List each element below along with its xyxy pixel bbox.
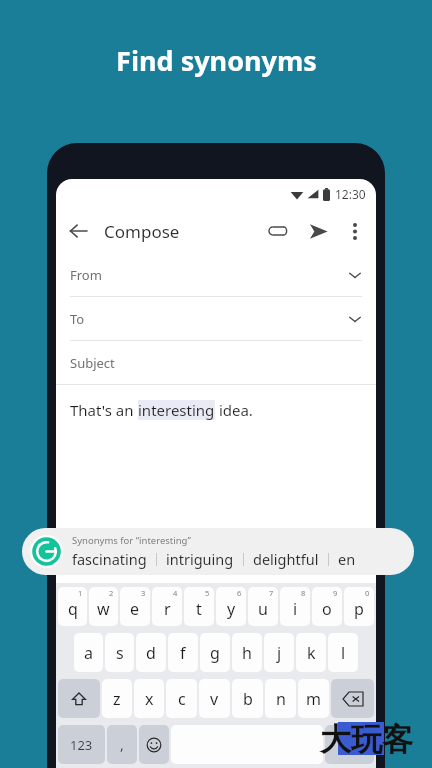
- button[interactable]: h: [232, 633, 262, 672]
- staticText: That's an: [70, 400, 138, 420]
- button[interactable]: v: [199, 679, 230, 718]
- staticText: 3: [141, 588, 146, 598]
- staticText: l: [341, 642, 346, 664]
- button[interactable]: 8: [280, 587, 310, 626]
- staticText: Synonyms for “interesting”: [72, 534, 191, 547]
- staticText: e: [130, 598, 140, 620]
- staticText: 12:30: [335, 186, 366, 202]
- button[interactable]: Attach: [258, 211, 298, 251]
- staticText: x: [145, 688, 154, 710]
- staticText: 1: [78, 588, 83, 598]
- staticText: 大: [320, 720, 351, 759]
- button[interactable]: 3: [120, 587, 150, 626]
- staticText: 9: [333, 588, 338, 598]
- staticText: j: [277, 642, 282, 664]
- staticText: delightful: [253, 549, 319, 569]
- button[interactable]: l: [328, 633, 358, 672]
- button[interactable]: 4: [152, 587, 182, 626]
- button[interactable]: Subject: [56, 341, 376, 384]
- button[interactable]: intriguing: [166, 549, 234, 569]
- button[interactable]: 2: [89, 587, 118, 626]
- staticText: en: [338, 549, 356, 569]
- button[interactable]: s: [105, 633, 134, 672]
- staticText: 4: [173, 588, 178, 598]
- staticText: Compose: [104, 220, 180, 243]
- button[interactable]: Numbers: [58, 725, 105, 764]
- staticText: m: [306, 688, 321, 710]
- staticText: k: [307, 642, 316, 664]
- button[interactable]: From: [56, 253, 376, 297]
- staticText: g: [210, 642, 220, 664]
- button[interactable]: fascinating: [72, 549, 147, 569]
- staticText: w: [97, 598, 110, 620]
- staticText: d: [146, 642, 156, 664]
- staticText: f: [180, 642, 186, 664]
- staticText: 7: [269, 588, 274, 598]
- button[interactable]: Shift: [58, 679, 100, 718]
- staticText: To: [70, 310, 85, 328]
- staticText: 6: [237, 588, 242, 598]
- staticText: c: [178, 688, 186, 710]
- staticText: a: [84, 642, 93, 664]
- staticText: o: [322, 598, 332, 620]
- staticText: 客: [382, 720, 413, 759]
- button[interactable]: m: [298, 679, 329, 718]
- staticText: r: [164, 598, 171, 620]
- staticText: fascinating: [72, 549, 147, 569]
- staticText: y: [227, 598, 236, 620]
- button[interactable]: Back: [56, 209, 100, 253]
- staticText: t: [196, 598, 202, 620]
- staticText: i: [293, 598, 298, 620]
- staticText: interesting: [138, 400, 215, 420]
- staticText: From: [70, 266, 102, 284]
- button[interactable]: 9: [312, 587, 342, 626]
- button[interactable]: Enter: [325, 725, 374, 764]
- staticText: v: [210, 688, 219, 710]
- button[interactable]: d: [136, 633, 166, 672]
- button[interactable]: en: [338, 549, 356, 569]
- staticText: 0: [365, 588, 370, 598]
- staticText: 123: [70, 736, 93, 754]
- button[interactable]: Emoji: [139, 725, 169, 764]
- staticText: ,: [120, 735, 124, 754]
- staticText: b: [243, 688, 253, 710]
- button[interactable]: delightful: [253, 549, 319, 569]
- staticText: s: [116, 642, 124, 664]
- button[interactable]: Backspace: [331, 679, 374, 718]
- staticText: Find synonyms: [116, 42, 317, 79]
- button[interactable]: 7: [248, 587, 278, 626]
- button[interactable]: n: [265, 679, 296, 718]
- staticText: u: [258, 598, 268, 620]
- button[interactable]: More options: [338, 214, 372, 248]
- staticText: 2: [109, 588, 114, 598]
- button[interactable]: 0: [344, 587, 374, 626]
- staticText: Subject: [70, 354, 115, 372]
- staticText: n: [276, 688, 286, 710]
- button[interactable]: Space: [171, 725, 323, 764]
- button[interactable]: 5: [184, 587, 214, 626]
- button[interactable]: 1: [58, 587, 87, 626]
- staticText: intriguing: [166, 549, 234, 569]
- button[interactable]: k: [296, 633, 326, 672]
- button[interactable]: Comma: [107, 725, 137, 764]
- button[interactable]: a: [74, 633, 103, 672]
- button[interactable]: f: [168, 633, 198, 672]
- button[interactable]: c: [166, 679, 197, 718]
- button[interactable]: j: [264, 633, 294, 672]
- button[interactable]: Send: [298, 211, 338, 251]
- button[interactable]: b: [232, 679, 263, 718]
- staticText: z: [113, 688, 121, 710]
- staticText: idea.: [215, 400, 253, 420]
- staticText: p: [354, 598, 364, 620]
- button[interactable]: 6: [216, 587, 246, 626]
- staticText: q: [68, 598, 78, 620]
- staticText: 8: [301, 588, 306, 598]
- staticText: 5: [205, 588, 210, 598]
- button[interactable]: z: [102, 679, 132, 718]
- staticText: 玩: [351, 720, 382, 759]
- staticText: h: [242, 642, 252, 664]
- button[interactable]: To: [56, 297, 376, 341]
- button[interactable]: Synonyms for “interesting”: [22, 528, 414, 575]
- button[interactable]: g: [200, 633, 230, 672]
- button[interactable]: x: [134, 679, 164, 718]
